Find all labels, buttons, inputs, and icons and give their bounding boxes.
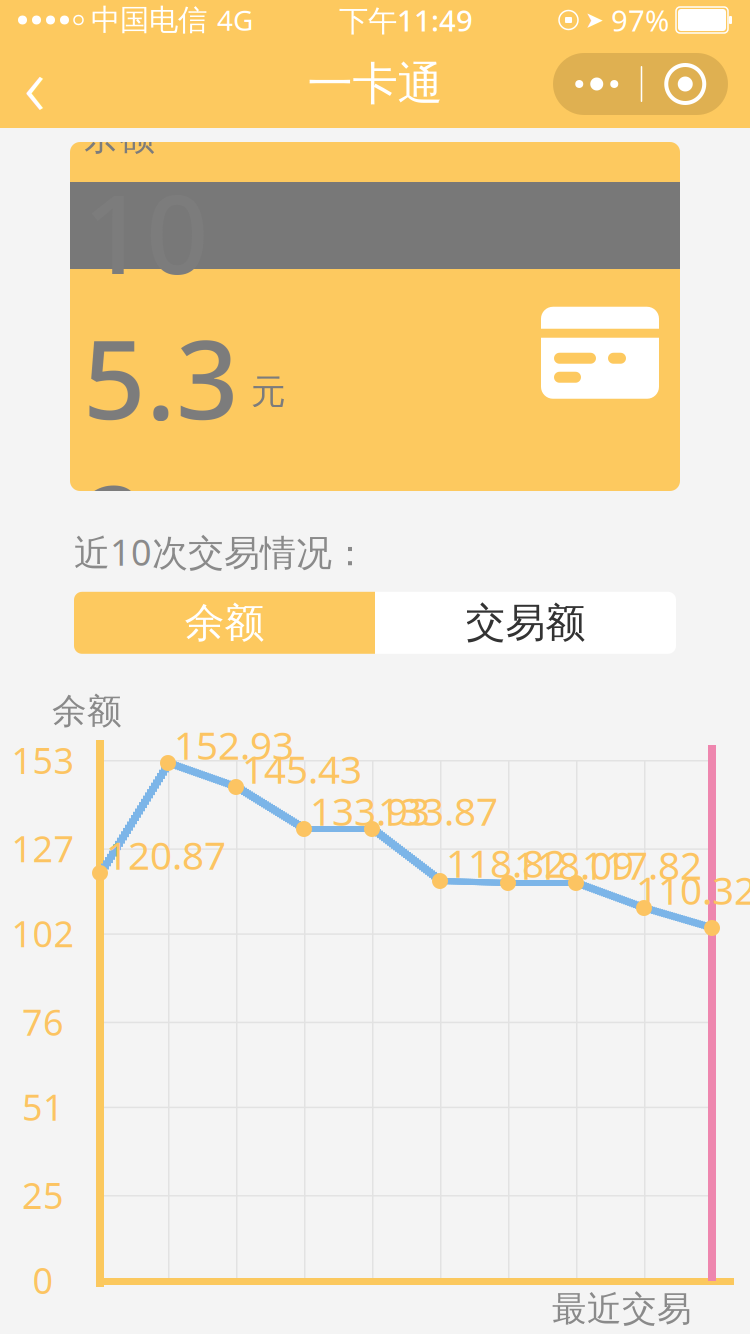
staticText: 最近交易 (552, 1288, 692, 1330)
staticText: 下午11:49 (339, 0, 473, 39)
staticText: 133.87 (378, 785, 498, 836)
staticText: 145.43 (242, 743, 362, 794)
staticText: 102 (11, 909, 74, 957)
staticText: 中国电信 (91, 2, 207, 38)
staticText: 97% (611, 0, 669, 39)
staticText: 118.82 (446, 837, 566, 888)
staticText: 117.82 (582, 839, 702, 890)
staticText: 127 (11, 824, 74, 872)
staticText: 余额 (83, 115, 155, 159)
staticText: 余额 (184, 598, 264, 647)
staticText: 51 (22, 1083, 64, 1131)
staticText: 卡号：2015 (437, 603, 605, 645)
staticText: 120.87 (106, 829, 226, 880)
staticText: 25 (22, 1171, 64, 1219)
staticText: ➤ (585, 7, 604, 33)
staticText: 105.32 (83, 159, 239, 595)
button[interactable]: 交易额 (375, 592, 676, 654)
staticText: 截至时间：2018-04-01 (83, 603, 407, 645)
staticText: 余额 (52, 690, 122, 733)
staticText: 153 (11, 736, 74, 784)
staticText: 152.93 (174, 719, 294, 770)
staticText: 76 (22, 998, 64, 1046)
button[interactable]: 更多与关闭 (553, 53, 728, 115)
staticText: 0 (32, 1256, 53, 1304)
staticText: 交易额 (465, 598, 585, 647)
staticText: 元 (251, 371, 286, 413)
staticText: 133.93 (310, 785, 430, 836)
button[interactable]: 余额 (74, 592, 375, 654)
staticText: 118.09 (514, 839, 634, 890)
staticText: 4G (217, 1, 253, 39)
button[interactable]: 返回 (0, 40, 70, 128)
staticText: 一卡通 (307, 56, 442, 112)
staticText: ‹ (24, 29, 46, 139)
staticText: 近10次交易情况： (74, 528, 368, 576)
staticText: 110.32 (636, 864, 750, 915)
